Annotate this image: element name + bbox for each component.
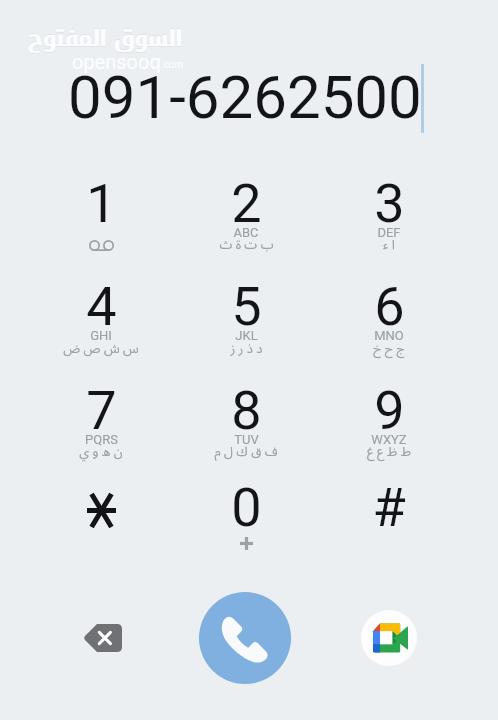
button[interactable] xyxy=(319,265,459,365)
staticText: السوق المفتوح xyxy=(27,18,182,62)
staticText: ا ء xyxy=(383,231,395,258)
staticText: ج ح خ xyxy=(373,335,405,362)
staticText: السوق المفتوح xyxy=(28,16,183,60)
staticText: السوق المفتوح xyxy=(27,17,182,61)
staticText: 8 xyxy=(231,379,262,442)
button[interactable] xyxy=(319,369,459,469)
button[interactable] xyxy=(176,162,316,262)
staticText: 4 xyxy=(86,275,117,338)
staticText: WXYZ xyxy=(371,432,407,447)
staticText: ن ه و ي xyxy=(79,438,123,465)
staticText: 5 xyxy=(231,275,262,338)
staticText: 091-6262500 xyxy=(68,62,422,132)
button[interactable] xyxy=(31,466,171,566)
staticText: 1 xyxy=(86,172,117,235)
staticText: السوق المفتوح xyxy=(29,17,184,61)
staticText: السوق المفتوح xyxy=(29,16,184,60)
staticText: 9 xyxy=(374,379,405,442)
staticText: السوق المفتوح xyxy=(28,17,183,61)
staticText: ABC xyxy=(233,225,259,240)
staticText: # xyxy=(372,476,406,539)
staticText: TUV xyxy=(234,432,259,447)
button[interactable] xyxy=(31,162,171,262)
button[interactable] xyxy=(31,265,171,365)
button[interactable] xyxy=(176,466,316,566)
button[interactable]: Backspace xyxy=(72,608,132,668)
button[interactable] xyxy=(319,466,459,566)
staticText: السوق المفتوح xyxy=(28,18,183,62)
staticText: السوق المفتوح xyxy=(29,18,184,62)
staticText: 6 xyxy=(374,275,405,338)
button[interactable] xyxy=(319,162,459,262)
staticText: 2 xyxy=(231,172,262,235)
staticText: السوق المفتوح xyxy=(27,17,182,61)
button[interactable]: Call xyxy=(199,592,291,684)
staticText: 0 xyxy=(231,476,262,539)
staticText: س ش ص ض xyxy=(63,335,139,362)
button[interactable]: Video call xyxy=(361,610,417,666)
button[interactable] xyxy=(176,369,316,469)
button[interactable] xyxy=(31,369,171,469)
staticText: opensooq xyxy=(72,50,161,73)
staticText: 7 xyxy=(86,379,117,442)
staticText: د ذ ر ز xyxy=(230,335,263,362)
button[interactable] xyxy=(176,265,316,365)
staticText: ب ت ة ث xyxy=(219,231,274,258)
staticText: JKL xyxy=(235,328,258,343)
staticText: 3 xyxy=(374,172,405,235)
staticText: السوق المفتوح xyxy=(27,16,182,60)
staticText: ط ظ ع غ xyxy=(367,438,411,465)
staticText: السوق المفتوح xyxy=(29,17,184,61)
staticText: MNO xyxy=(374,328,404,343)
staticText: GHI xyxy=(90,328,112,343)
staticText: DEF xyxy=(377,225,401,240)
staticText: .com xyxy=(161,59,184,71)
staticText: PQRS xyxy=(85,432,118,447)
staticText: ف ق ك ل م xyxy=(214,438,278,465)
